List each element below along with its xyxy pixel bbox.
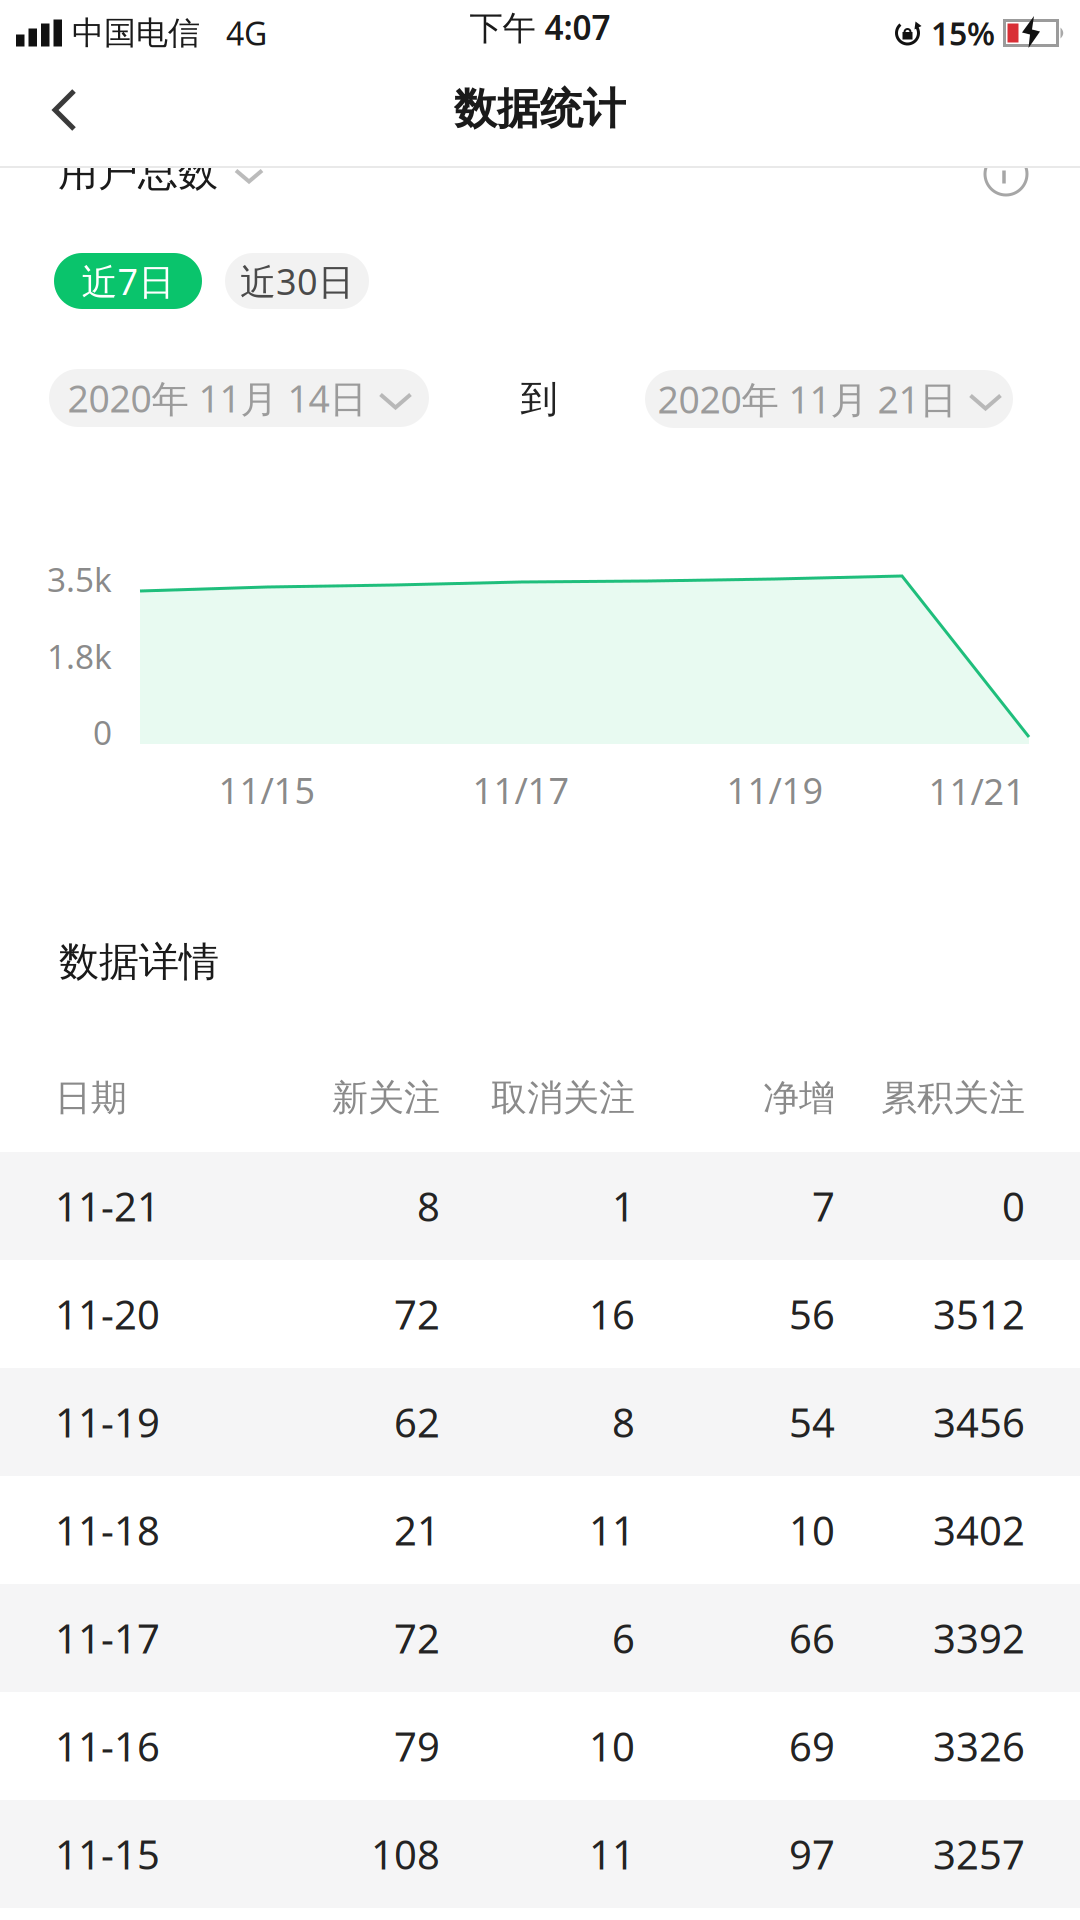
staticText: 11-20: [55, 1287, 160, 1340]
staticText: 0: [1002, 1179, 1025, 1232]
staticText: 108: [371, 1827, 440, 1880]
button[interactable]: 2020年 11月 14日: [49, 369, 429, 427]
staticText: 下午 4:07: [469, 5, 610, 49]
staticText: 中国电信: [72, 13, 200, 53]
staticText: 2020年 11月 21日: [657, 374, 956, 424]
staticText: 2020年 11月 14日: [67, 373, 366, 423]
staticText: 7: [812, 1179, 835, 1232]
staticText: 近7日: [81, 257, 174, 305]
staticText: 3456: [933, 1395, 1025, 1448]
staticText: 1: [612, 1179, 635, 1232]
staticText: 数据详情: [59, 937, 219, 986]
staticText: 累积关注: [881, 1076, 1025, 1120]
staticText: 净增: [763, 1076, 835, 1120]
staticText: 0: [93, 710, 112, 754]
staticText: 6: [612, 1611, 635, 1664]
button[interactable]: 2020年 11月 21日: [645, 370, 1013, 428]
staticText: 56: [789, 1287, 835, 1340]
staticText: 15%: [931, 12, 995, 54]
staticText: 日期: [55, 1076, 127, 1120]
staticText: 97: [789, 1827, 835, 1880]
staticText: 66: [789, 1611, 835, 1664]
staticText: 11/17: [472, 766, 569, 814]
staticText: 3402: [933, 1503, 1025, 1556]
staticText: 4G: [226, 12, 267, 54]
staticText: 11-21: [55, 1179, 160, 1232]
staticText: 用户总数: [58, 147, 218, 196]
staticText: 11-16: [55, 1719, 160, 1772]
staticText: 10: [789, 1503, 835, 1556]
staticText: 11-15: [55, 1827, 160, 1880]
button[interactable]: Back: [0, 60, 112, 160]
staticText: 数据统计: [454, 83, 626, 135]
button[interactable]: 用户总数: [58, 147, 262, 196]
staticText: 72: [394, 1611, 440, 1664]
button[interactable]: 近7日: [54, 253, 202, 309]
staticText: 3392: [933, 1611, 1025, 1664]
staticText: 79: [394, 1719, 440, 1772]
button[interactable]: 近30日: [225, 253, 369, 309]
staticText: 69: [789, 1719, 835, 1772]
staticText: 21: [394, 1503, 440, 1556]
staticText: 8: [612, 1395, 635, 1448]
staticText: 3326: [933, 1719, 1025, 1772]
staticText: 62: [394, 1395, 440, 1448]
staticText: 3257: [933, 1827, 1025, 1880]
staticText: 11-19: [55, 1395, 160, 1448]
staticText: 3.5k: [47, 557, 112, 601]
staticText: 11: [589, 1503, 635, 1556]
staticText: 11-17: [55, 1611, 160, 1664]
staticText: 16: [589, 1287, 635, 1340]
staticText: 10: [589, 1719, 635, 1772]
staticText: 近30日: [240, 257, 354, 305]
staticText: 72: [394, 1287, 440, 1340]
staticText: 新关注: [332, 1076, 440, 1120]
staticText: 到: [520, 376, 557, 422]
staticText: 11-18: [55, 1503, 160, 1556]
staticText: 11/19: [726, 766, 823, 814]
staticText: 取消关注: [491, 1076, 635, 1120]
staticText: 1.8k: [47, 634, 112, 678]
staticText: 11: [589, 1827, 635, 1880]
staticText: 54: [789, 1395, 835, 1448]
staticText: 11/21: [928, 767, 1025, 815]
staticText: 11/15: [218, 766, 315, 814]
staticText: 8: [417, 1179, 440, 1232]
staticText: 3512: [933, 1287, 1025, 1340]
button[interactable]: 用户总数说明: [983, 151, 1029, 197]
